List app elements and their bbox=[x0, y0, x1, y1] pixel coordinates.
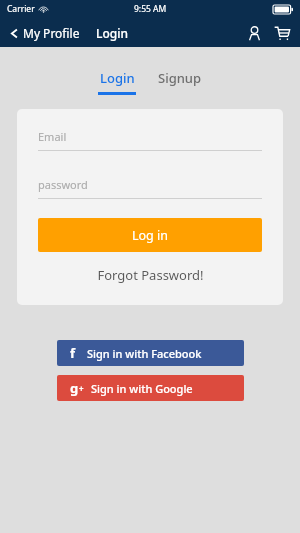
button[interactable]: f bbox=[57, 340, 244, 366]
staticText: Login bbox=[100, 69, 135, 87]
staticText: Forgot Password! bbox=[97, 266, 204, 284]
staticText: + bbox=[79, 383, 84, 394]
button[interactable]: Forgot Password! bbox=[38, 266, 262, 284]
button[interactable]: g bbox=[57, 375, 244, 401]
staticText: g bbox=[70, 379, 79, 397]
staticText: Log in bbox=[132, 227, 169, 244]
staticText: Sign in with Facebook bbox=[87, 346, 202, 361]
staticText: f bbox=[70, 344, 76, 362]
button[interactable]: Account bbox=[243, 22, 266, 45]
button[interactable]: Cart bbox=[270, 21, 294, 45]
staticText: My Profile bbox=[23, 25, 80, 41]
button[interactable]: Log in bbox=[38, 218, 262, 252]
staticText: 9:55 AM bbox=[134, 3, 167, 15]
staticText: Carrier bbox=[7, 3, 35, 15]
staticText: password bbox=[38, 177, 88, 192]
staticText: Email bbox=[38, 129, 67, 144]
button[interactable]: My Profile bbox=[6, 21, 83, 45]
staticText: Login bbox=[96, 25, 128, 41]
staticText: Signup bbox=[158, 69, 202, 87]
button[interactable]: Login bbox=[93, 21, 131, 45]
button[interactable]: Signup bbox=[152, 69, 208, 87]
button[interactable]: Login bbox=[92, 69, 142, 95]
staticText: Sign in with Google bbox=[91, 381, 193, 396]
